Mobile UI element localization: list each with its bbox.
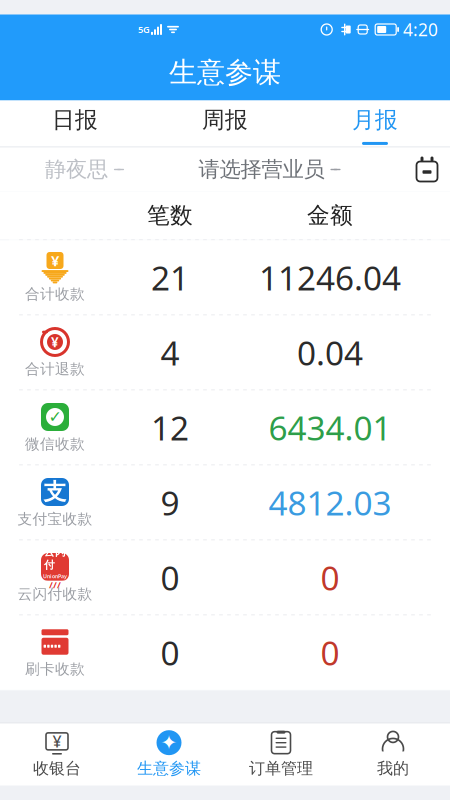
button[interactable]: ¥ (0, 315, 450, 389)
staticText: 11246.04 (259, 255, 401, 300)
button[interactable]: ¥ (0, 240, 450, 314)
staticText: ✓ (48, 408, 61, 426)
button[interactable]: ✓ (0, 390, 450, 464)
staticText: 生意参谋 (137, 759, 201, 778)
staticText: 5G (138, 23, 150, 36)
staticText: 周报 (202, 106, 248, 134)
button[interactable]: 支 (0, 465, 450, 539)
staticText: 金额 (307, 202, 353, 229)
staticText: 我的 (377, 759, 409, 778)
button[interactable]: 月报 (300, 100, 450, 146)
staticText: 12 (151, 405, 189, 450)
staticText: UnionPay (43, 573, 67, 580)
staticText: 笔数 (147, 202, 193, 229)
staticText: 日报 (52, 106, 98, 134)
staticText: 支 (43, 478, 66, 506)
staticText: 0.04 (297, 330, 363, 375)
staticText: 4:20 (403, 18, 438, 41)
staticText: 4812.03 (268, 480, 391, 525)
button[interactable]: 静夜思 (0, 147, 170, 191)
button[interactable]: ¥ (1, 723, 113, 785)
button[interactable]: 请选择营业员 (170, 147, 370, 191)
staticText: 21 (151, 255, 189, 300)
staticText: 4 (160, 330, 179, 375)
staticText: /// (49, 578, 61, 591)
staticText: ¥ (51, 251, 59, 270)
button[interactable]: 选择日期 (404, 147, 450, 191)
staticText: 0 (320, 630, 339, 675)
button[interactable]: 订单管理 (225, 723, 337, 785)
staticText: 合计收款 (25, 285, 85, 303)
button[interactable]: 云闪付 (0, 540, 450, 614)
staticText: 云闪付收款 (17, 585, 92, 603)
staticText: ✦ (160, 731, 177, 754)
staticText: 0 (320, 555, 339, 600)
staticText: 月报 (352, 106, 398, 134)
button[interactable]: 刷卡收款 (0, 615, 450, 689)
button[interactable]: 周报 (150, 100, 300, 146)
button[interactable]: 日报 (0, 100, 150, 146)
staticText: 静夜思 (45, 156, 108, 183)
staticText: 0 (160, 555, 179, 600)
staticText: 请选择营业员 (198, 156, 324, 183)
staticText: ¥ (51, 333, 59, 351)
button[interactable]: ✦ (113, 723, 225, 785)
button[interactable]: 我的 (337, 723, 449, 785)
staticText: 刷卡收款 (25, 660, 85, 678)
staticText: 微信收款 (25, 435, 85, 453)
staticText: 订单管理 (249, 759, 313, 778)
staticText: 收银台 (33, 759, 81, 778)
staticText: 支付宝收款 (17, 510, 92, 528)
staticText: 合计退款 (25, 360, 85, 378)
staticText: 生意参谋 (169, 55, 281, 90)
staticText: 0 (160, 630, 179, 675)
staticText: 9 (160, 480, 179, 525)
staticText: 6434.01 (268, 405, 391, 450)
staticText: ¥ (52, 731, 61, 752)
staticText: 云闪付 (44, 545, 66, 571)
